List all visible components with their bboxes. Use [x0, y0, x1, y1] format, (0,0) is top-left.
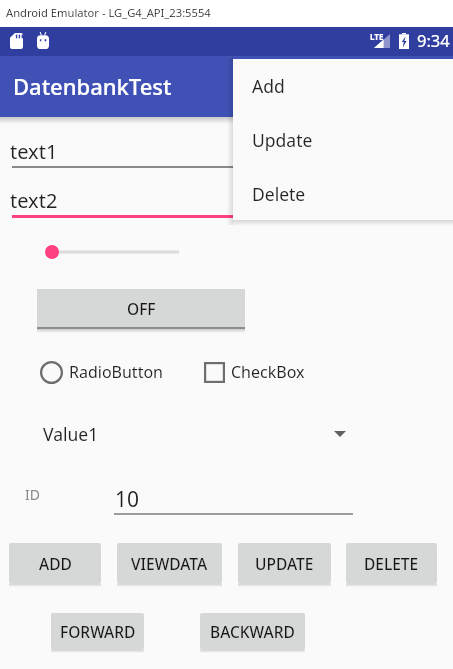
- staticText: CheckBox: [231, 361, 305, 383]
- button[interactable]: Update: [233, 113, 453, 167]
- button[interactable]: Seek bar: [40, 240, 192, 264]
- staticText: Android Emulator - LG_G4_API_23:5554: [6, 5, 211, 20]
- button[interactable]: text1: [0, 136, 453, 170]
- button[interactable]: Delete: [233, 167, 453, 220]
- staticText: Value1: [43, 422, 99, 446]
- button[interactable]: BACKWARD: [200, 613, 305, 650]
- staticText: UPDATE: [255, 553, 314, 574]
- staticText: ID: [25, 485, 40, 504]
- staticText: Delete: [252, 182, 306, 206]
- staticText: text2: [10, 187, 58, 214]
- staticText: FORWARD: [60, 621, 136, 642]
- button[interactable]: text2: [0, 185, 453, 219]
- button[interactable]: 10: [114, 485, 353, 516]
- staticText: VIEWDATA: [131, 553, 208, 574]
- staticText: Update: [252, 128, 313, 152]
- button[interactable]: OFF: [37, 289, 245, 327]
- staticText: OFF: [127, 298, 156, 319]
- button[interactable]: DELETE: [346, 543, 437, 584]
- staticText: ADD: [39, 553, 72, 574]
- button[interactable]: VIEWDATA: [117, 543, 222, 584]
- staticText: LTE: [370, 31, 384, 42]
- staticText: 9:34: [417, 29, 450, 51]
- staticText: Add: [252, 74, 285, 98]
- button[interactable]: ADD: [9, 543, 101, 584]
- button[interactable]: CheckBox: [204, 358, 305, 386]
- staticText: DatenbankTest: [13, 71, 172, 101]
- button[interactable]: FORWARD: [51, 613, 144, 650]
- staticText: RadioButton: [69, 361, 163, 383]
- button[interactable]: Value1: [38, 417, 346, 451]
- staticText: DELETE: [364, 553, 419, 574]
- button[interactable]: UPDATE: [238, 543, 331, 584]
- button[interactable]: Add: [233, 59, 453, 113]
- staticText: BACKWARD: [210, 621, 295, 642]
- staticText: text1: [10, 138, 58, 165]
- staticText: 10: [115, 485, 140, 514]
- button[interactable]: RadioButton: [40, 358, 163, 386]
